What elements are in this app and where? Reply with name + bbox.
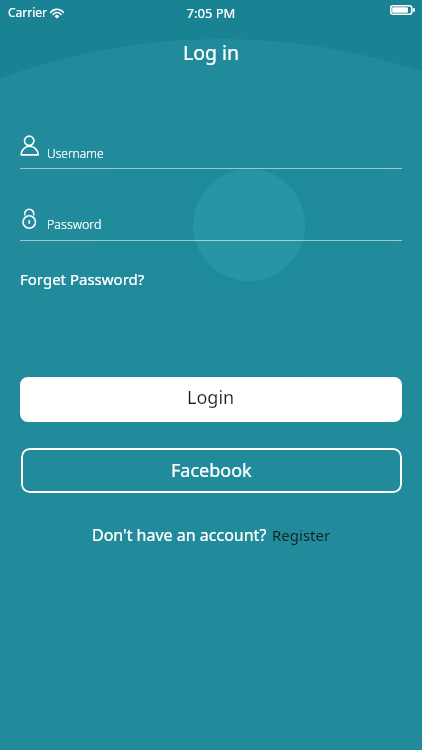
staticText: Carrier xyxy=(8,4,48,20)
staticText: Password xyxy=(47,216,102,233)
button[interactable]: Login xyxy=(20,377,402,422)
staticText: Register xyxy=(272,525,331,545)
button[interactable]: Register xyxy=(272,525,331,545)
other: Battery xyxy=(390,5,415,15)
staticText: Facebook xyxy=(171,458,252,483)
staticText: Login xyxy=(187,385,235,410)
staticText: Log in xyxy=(0,39,422,66)
staticText: Don't have an account? xyxy=(92,524,267,546)
staticText: Username xyxy=(47,145,104,161)
staticText: 7:05 PM xyxy=(0,4,422,22)
button[interactable]: Forget Password? xyxy=(20,269,145,289)
staticText: Forget Password? xyxy=(20,269,145,289)
button[interactable]: Facebook xyxy=(21,448,402,493)
